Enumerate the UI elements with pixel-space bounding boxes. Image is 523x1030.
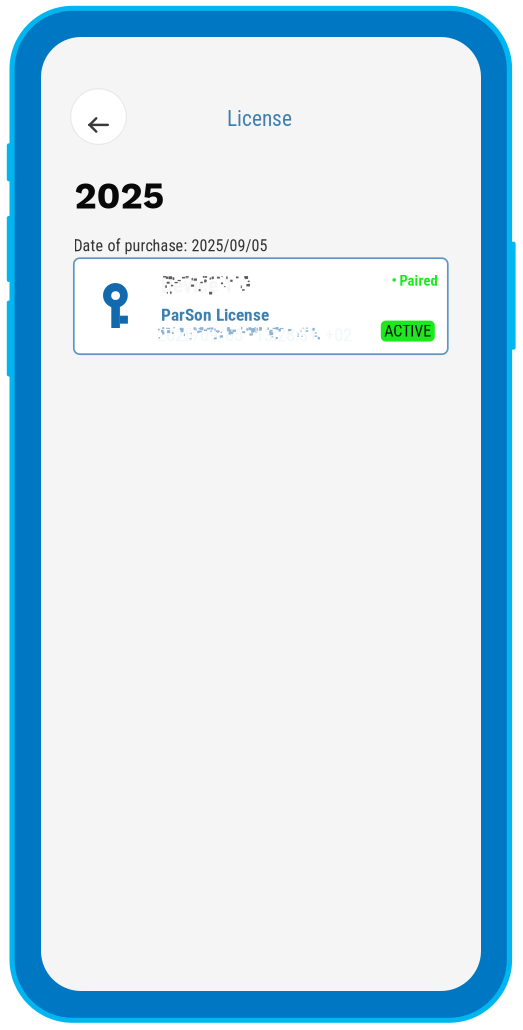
button[interactable]: Back [71,89,126,144]
staticText: Date of purchase: 2025/09/05 [74,236,268,255]
staticText: Device 1 [161,273,234,298]
staticText: License [227,106,292,131]
staticText: ParSon License [161,305,269,325]
staticText: 2025/09/05 13:28:31 +02 [157,324,352,346]
staticText: ACTIVE [384,322,431,340]
button[interactable]: Device 1 [74,258,448,354]
staticText: • Paired [392,272,438,289]
staticText: 2025 [74,174,164,217]
button[interactable]: License [227,106,292,131]
